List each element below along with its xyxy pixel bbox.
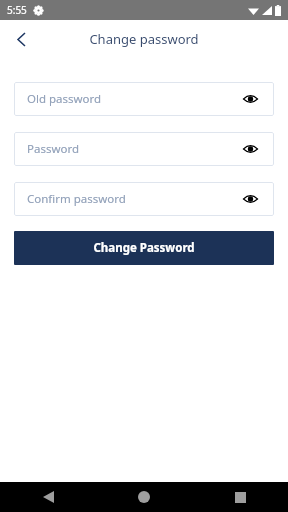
button[interactable]: Back: [0, 482, 96, 512]
staticText: Change Password: [93, 240, 195, 256]
button[interactable]: Change Password: [14, 231, 274, 265]
button[interactable]: Old password: [14, 82, 274, 116]
button[interactable]: Show password: [239, 188, 261, 210]
staticText: Password: [27, 141, 239, 157]
staticText: Change password: [89, 30, 199, 48]
button[interactable]: Recent apps: [192, 482, 288, 512]
button[interactable]: Home: [96, 482, 192, 512]
button[interactable]: Back: [6, 24, 36, 54]
button[interactable]: Show password: [239, 88, 261, 110]
button[interactable]: Confirm password: [14, 182, 274, 216]
staticText: Old password: [27, 91, 239, 107]
button[interactable]: Show password: [239, 138, 261, 160]
staticText: Confirm password: [27, 191, 239, 207]
staticText: 5:55: [7, 3, 27, 17]
button[interactable]: Password: [14, 132, 274, 166]
